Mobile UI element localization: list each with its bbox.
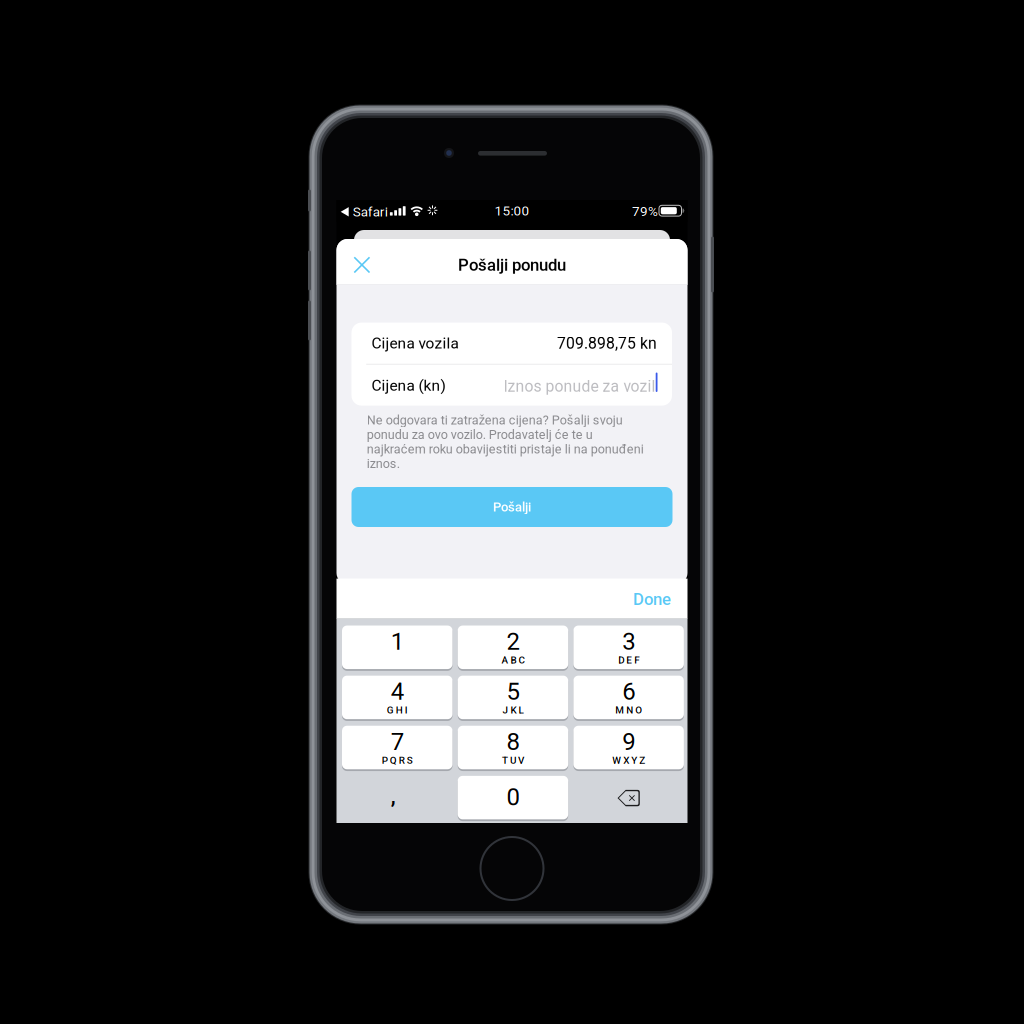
- staticText: Iznos ponude za vozilo: [503, 377, 664, 396]
- button[interactable]: Done: [633, 579, 687, 620]
- button[interactable]: 4: [342, 676, 452, 720]
- staticText: 9: [622, 728, 635, 756]
- staticText: Cijena (kn): [371, 376, 445, 394]
- staticText: Done: [633, 590, 671, 609]
- staticText: J K L: [502, 704, 523, 716]
- staticText: A B C: [501, 654, 524, 666]
- button[interactable]: Delete: [573, 776, 684, 820]
- staticText: W X Y Z: [612, 754, 645, 766]
- staticText: 79%: [632, 204, 658, 219]
- button[interactable]: Pošalji: [351, 487, 672, 527]
- staticText: 1: [391, 627, 404, 656]
- staticText: Pošalji: [493, 499, 531, 515]
- staticText: najkraćem roku obavijestiti pristaje li …: [367, 442, 644, 457]
- staticText: P Q R S: [382, 754, 413, 766]
- staticText: 6: [622, 678, 635, 706]
- button[interactable]: 1: [342, 626, 452, 669]
- button[interactable]: 3: [573, 626, 684, 669]
- staticText: 4: [391, 678, 404, 706]
- staticText: 709.898,75 kn: [557, 334, 657, 353]
- staticText: Pošalji ponudu: [458, 255, 566, 275]
- staticText: Ne odgovara ti zatražena cijena? Pošalji…: [367, 413, 623, 427]
- staticText: G H I: [387, 704, 408, 716]
- button[interactable]: 9: [573, 726, 684, 770]
- button[interactable]: 6: [573, 676, 684, 720]
- staticText: 2: [506, 627, 519, 656]
- staticText: 3: [622, 627, 635, 656]
- staticText: ponudu za ovo vozilo. Prodavatelj će te …: [367, 427, 593, 442]
- button[interactable]: Close: [354, 257, 370, 273]
- staticText: 0: [506, 783, 519, 811]
- button[interactable]: 5: [458, 676, 568, 720]
- staticText: 8: [506, 728, 519, 756]
- staticText: iznos.: [367, 456, 400, 471]
- button[interactable]: 2: [458, 626, 568, 669]
- button[interactable]: 7: [342, 726, 452, 770]
- staticText: 5: [506, 678, 519, 706]
- staticText: Cijena vozila: [371, 334, 458, 352]
- staticText: M N O: [615, 704, 642, 716]
- staticText: Safari: [353, 204, 388, 220]
- button[interactable]: 0: [458, 776, 568, 820]
- staticText: D E F: [618, 654, 639, 666]
- button[interactable]: ,: [342, 776, 452, 820]
- staticText: T U V: [502, 754, 524, 766]
- button[interactable]: 8: [458, 726, 568, 770]
- staticText: 7: [391, 728, 404, 756]
- staticText: ,: [391, 784, 396, 808]
- button[interactable]: Safari: [341, 204, 392, 220]
- staticText: 15:00: [494, 203, 529, 219]
